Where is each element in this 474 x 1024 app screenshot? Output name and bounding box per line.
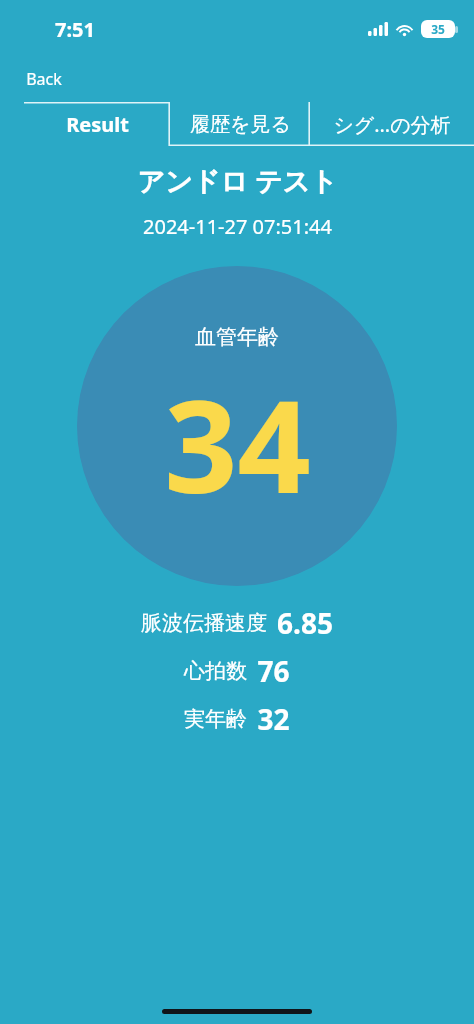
staticText: 履歴を見る	[190, 112, 291, 137]
button[interactable]: 血管年齢	[77, 266, 397, 586]
button[interactable]: シグ…の分析	[310, 102, 474, 146]
other: Cellular signal	[368, 22, 388, 36]
button[interactable]: 実年齢	[0, 700, 474, 738]
staticText: 76	[257, 652, 290, 690]
button[interactable]: Result	[24, 102, 170, 146]
staticText: 35	[431, 21, 445, 37]
staticText: Result	[66, 111, 129, 138]
button[interactable]: Back	[24, 66, 64, 92]
button[interactable]: 心拍数	[0, 652, 474, 690]
staticText: 心拍数	[184, 658, 247, 684]
staticText: 血管年齢	[195, 324, 279, 350]
button[interactable]: 脈波伝播速度	[0, 604, 474, 642]
staticText: シグ…の分析	[333, 111, 451, 138]
staticText: 実年齢	[184, 706, 247, 732]
staticText: アンドロ テスト	[137, 162, 338, 199]
staticText: 34	[164, 356, 311, 530]
other: Battery 35 percent	[421, 20, 455, 38]
staticText: 6.85	[277, 604, 333, 642]
other: Wi-Fi	[395, 22, 414, 36]
staticText: 7:51	[55, 16, 95, 43]
button[interactable]: 履歴を見る	[170, 102, 310, 146]
staticText: 脈波伝播速度	[141, 610, 267, 636]
staticText: 2024-11-27 07:51:44	[143, 213, 332, 240]
staticText: 32	[257, 700, 290, 738]
staticText: Back	[26, 68, 62, 90]
